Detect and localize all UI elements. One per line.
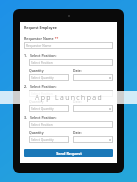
- staticText: Date:: [73, 68, 82, 73]
- staticText: Send Request: [56, 151, 82, 156]
- button[interactable]: Requestor Name: [24, 42, 113, 49]
- staticText: Select Position: [31, 123, 53, 127]
- staticText: Select Position:: [30, 84, 57, 89]
- staticText: Select Position:: [30, 53, 57, 58]
- staticText: Quantity: [29, 99, 44, 104]
- staticText: Requestor Name: [24, 36, 54, 41]
- staticText: Quantity: [29, 130, 44, 135]
- button[interactable]: Select date: [73, 105, 113, 112]
- staticText: Select Position: [31, 61, 53, 65]
- staticText: App Launchpad: [35, 93, 103, 103]
- staticText: 3.: [24, 115, 28, 120]
- staticText: Date:: [73, 130, 82, 135]
- staticText: Select Position: [31, 92, 53, 96]
- staticText: Select Quantity: [31, 76, 54, 80]
- staticText: Requestor Name: [26, 44, 52, 48]
- button[interactable]: Select Quantity: [29, 74, 69, 81]
- staticText: Select Position:: [30, 115, 57, 120]
- staticText: Date:: [73, 99, 82, 104]
- button[interactable]: Select date: [73, 136, 113, 143]
- button[interactable]: Select Quantity: [29, 136, 69, 143]
- button[interactable]: Select Position: [29, 59, 113, 66]
- button[interactable]: Select Position: [29, 90, 113, 97]
- button[interactable]: Select date: [73, 74, 113, 81]
- staticText: Quantity: [29, 68, 44, 73]
- button[interactable]: Select Position: [29, 121, 113, 128]
- button[interactable]: Send Request: [24, 149, 113, 157]
- staticText: Select Quantity: [31, 138, 54, 142]
- staticText: 2.: [24, 84, 28, 89]
- staticText: Request Employee: [24, 25, 57, 30]
- staticText: Select Quantity: [31, 107, 54, 111]
- button[interactable]: Select Quantity: [29, 105, 69, 112]
- staticText: **: [54, 37, 59, 41]
- staticText: 1.: [24, 53, 28, 58]
